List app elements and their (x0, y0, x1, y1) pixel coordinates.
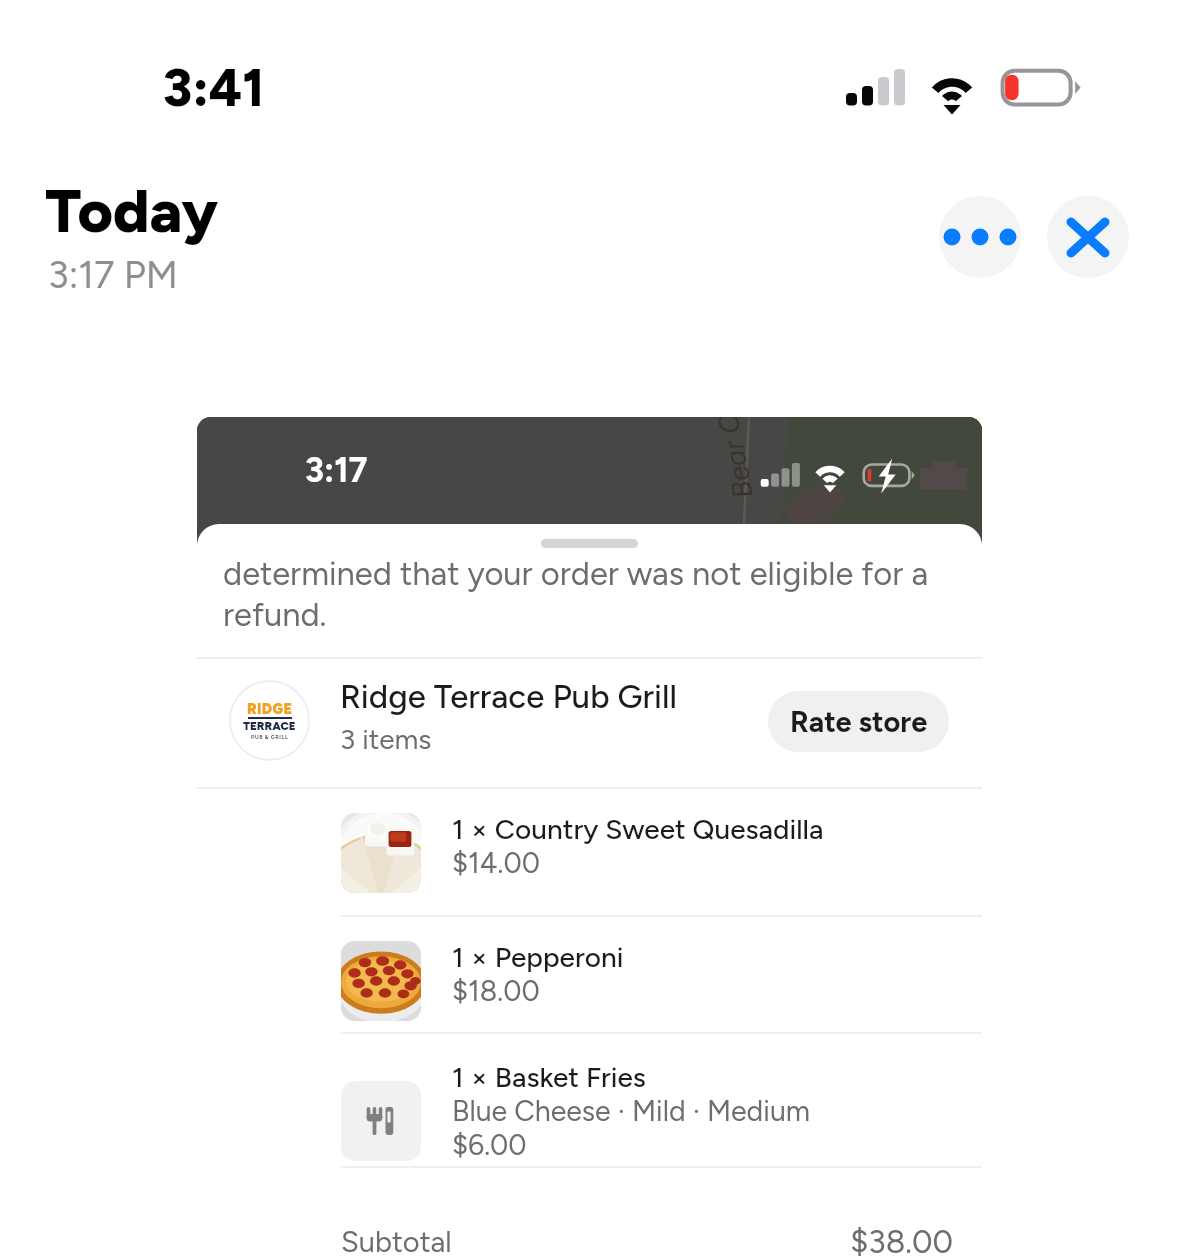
button[interactable]: 1 × Country Sweet Quesadilla (197, 787, 982, 915)
staticText: $6.00 (452, 1128, 527, 1162)
button[interactable]: 1 × Pepperoni (197, 915, 982, 1032)
staticText: 3:17 PM (48, 252, 178, 298)
staticText: 1 × Country Sweet Quesadilla (452, 812, 824, 846)
button[interactable]: More options (939, 196, 1021, 278)
staticText: determined that your order was not eligi… (223, 554, 935, 635)
button[interactable]: Close (1047, 196, 1129, 278)
staticText: $14.00 (452, 846, 540, 880)
staticText: Ridge Terrace Pub Grill (340, 677, 677, 717)
staticText: 1 × Pepperoni (452, 940, 624, 974)
staticText: PUB & GRILL (251, 734, 289, 741)
button[interactable]: RIDGE (197, 657, 982, 787)
button[interactable]: 1 × Basket Fries (197, 1032, 982, 1166)
staticText: Subtotal (341, 1224, 452, 1256)
staticText: RIDGE (247, 700, 293, 717)
button[interactable]: Rate store (768, 691, 949, 752)
staticText: 3 items (340, 722, 432, 756)
staticText: Today (45, 174, 218, 247)
staticText: Rate store (790, 704, 928, 739)
staticText: Blue Cheese · Mild · Medium (452, 1094, 811, 1128)
staticText: 3:41 (163, 57, 265, 119)
staticText: TERRACE (243, 719, 296, 733)
staticText: 3:17 (305, 450, 368, 491)
staticText: Bear Cr (708, 417, 760, 501)
staticText: 1 × Basket Fries (452, 1060, 646, 1094)
staticText: $18.00 (452, 974, 540, 1008)
staticText: $38.00 (849, 1223, 953, 1256)
